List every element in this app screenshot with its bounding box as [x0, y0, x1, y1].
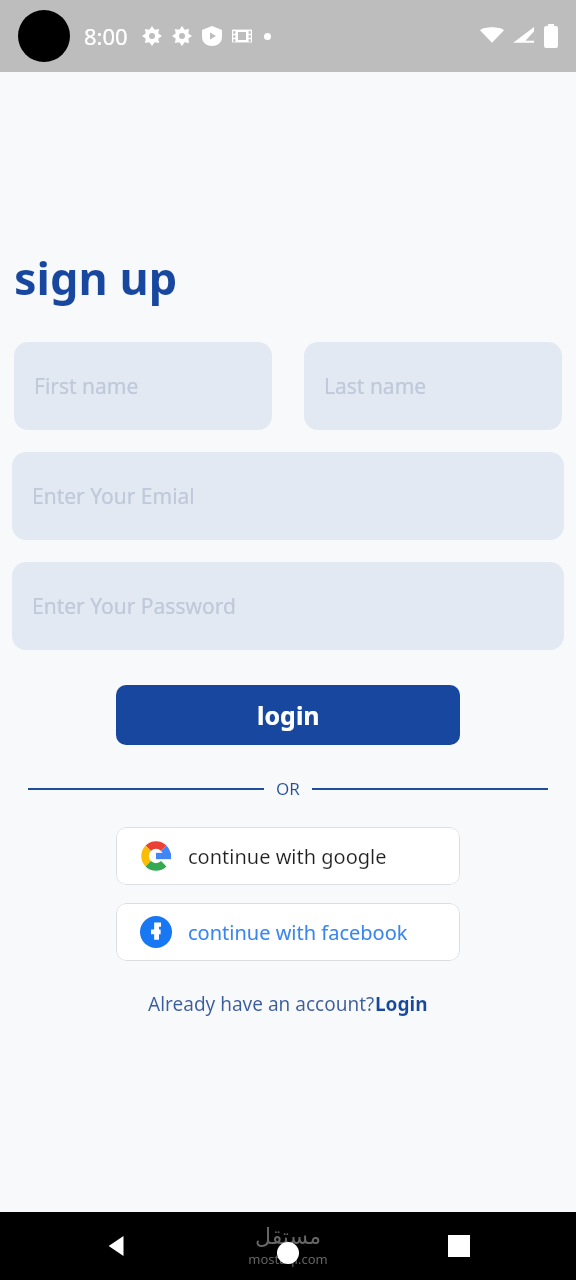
button[interactable]: Last name: [304, 342, 562, 430]
button[interactable]: continue with google: [116, 827, 460, 885]
button[interactable]: First name: [14, 342, 272, 430]
button[interactable]: continue with facebook: [116, 903, 460, 961]
staticText: مستقل: [255, 1224, 321, 1250]
staticText: Enter Your Password: [32, 592, 236, 621]
staticText: continue with facebook: [188, 919, 408, 946]
staticText: continue with google: [188, 843, 387, 870]
button[interactable]: Home: [266, 1231, 310, 1275]
staticText: First name: [34, 372, 139, 401]
button[interactable]: Enter Your Password: [12, 562, 564, 650]
staticText: OR: [276, 777, 300, 800]
staticText: login: [257, 698, 320, 732]
staticText: Enter Your Emial: [32, 482, 195, 511]
button[interactable]: login: [116, 685, 460, 745]
button[interactable]: Enter Your Emial: [12, 452, 564, 540]
staticText: Last name: [324, 372, 427, 401]
staticText: sign up: [14, 247, 178, 308]
button[interactable]: Already have an account?: [0, 991, 576, 1017]
staticText: 8:00: [84, 21, 128, 51]
staticText: Already have an account?: [148, 991, 375, 1017]
button[interactable]: Recent apps: [437, 1224, 481, 1268]
staticText: mostaql.com: [248, 1250, 328, 1268]
button[interactable]: Back: [95, 1224, 139, 1268]
staticText: Login: [375, 991, 428, 1017]
